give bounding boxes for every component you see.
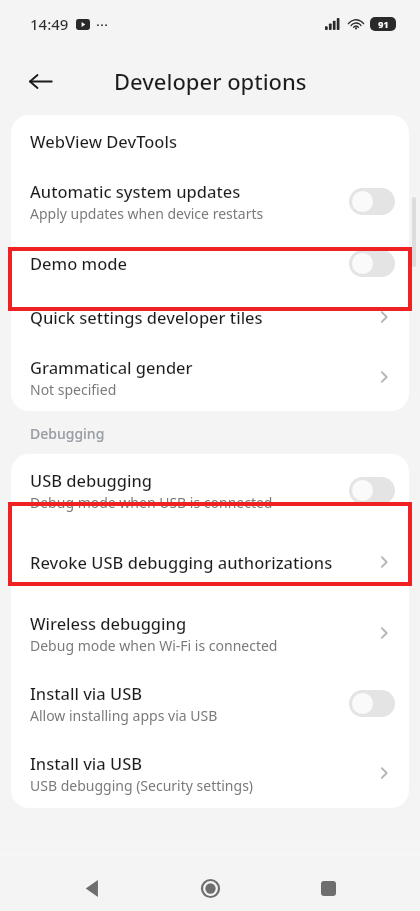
staticText: Allow installing apps via USB: [30, 706, 218, 725]
staticText: Install via USB: [30, 752, 143, 774]
staticText: USB debugging: [30, 469, 153, 491]
staticText: USB debugging (Security settings): [30, 776, 254, 795]
button[interactable]: Quick settings developer tiles: [11, 291, 409, 343]
button[interactable]: USB debugging: [11, 454, 409, 526]
staticText: Revoke USB debugging authorizations: [30, 551, 333, 573]
button[interactable]: Install via USB: [11, 738, 409, 808]
button[interactable]: Demo mode: [11, 235, 409, 291]
staticText: Grammatical gender: [30, 356, 193, 378]
staticText: Install via USB: [30, 682, 143, 704]
button[interactable]: Toggle: [349, 477, 395, 504]
staticText: Automatic system updates: [30, 180, 241, 202]
staticText: Quick settings developer tiles: [30, 306, 263, 328]
button[interactable]: Recents: [302, 865, 354, 911]
button[interactable]: Toggle: [349, 690, 395, 717]
staticText: Debugging: [30, 424, 105, 443]
button[interactable]: WebView DevTools: [11, 115, 409, 167]
staticText: WebView DevTools: [30, 130, 177, 152]
staticText: Debug mode when Wi-Fi is connected: [30, 636, 278, 655]
button[interactable]: Toggle: [349, 250, 395, 277]
staticText: Wireless debugging: [30, 612, 187, 634]
button[interactable]: Back: [66, 865, 118, 911]
button[interactable]: Grammatical gender: [11, 343, 409, 411]
staticText: Apply updates when device restarts: [30, 204, 264, 223]
staticText: Demo mode: [30, 252, 127, 274]
staticText: 14:49: [30, 14, 69, 34]
button[interactable]: Back: [18, 59, 62, 103]
button[interactable]: Revoke USB debugging authorizations: [11, 526, 409, 598]
button[interactable]: Toggle: [349, 188, 395, 215]
staticText: 91: [378, 18, 389, 30]
staticText: Not specified: [30, 380, 117, 399]
button[interactable]: Install via USB: [11, 668, 409, 738]
staticText: Debug mode when USB is connected: [30, 493, 273, 512]
button[interactable]: Home: [184, 865, 236, 911]
staticText: Developer options: [114, 66, 307, 96]
button[interactable]: Wireless debugging: [11, 598, 409, 668]
button[interactable]: Automatic system updates: [11, 167, 409, 235]
